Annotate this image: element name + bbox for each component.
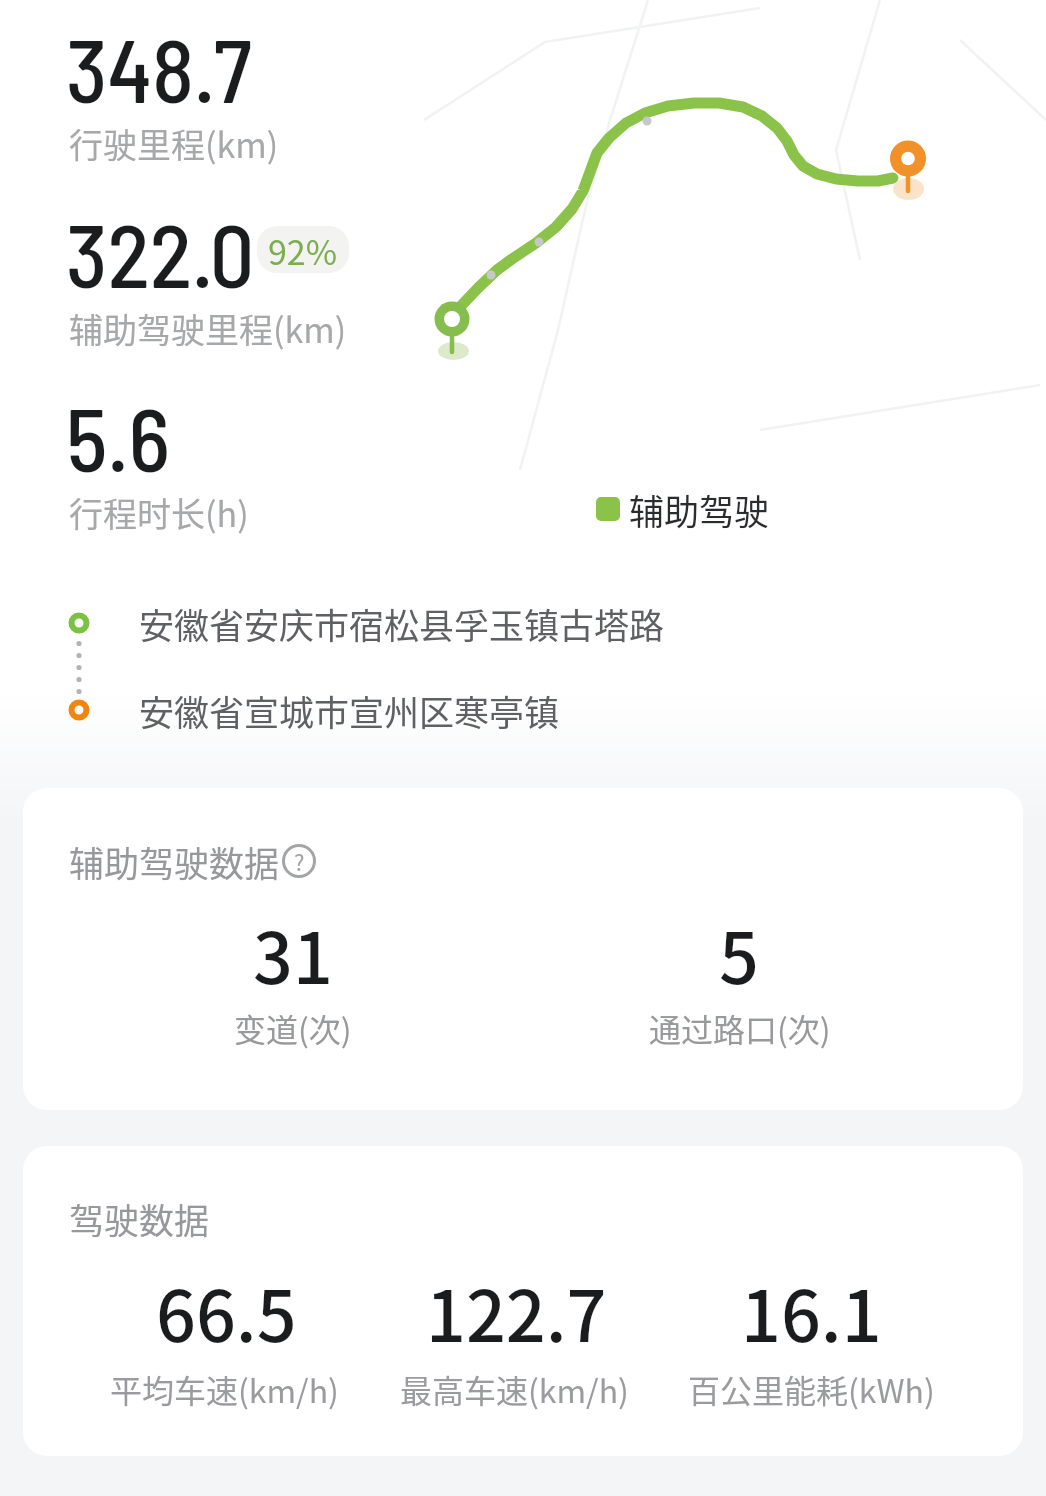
staticText: 行程时长(h) xyxy=(69,488,249,537)
staticText: 变道(次) xyxy=(234,1005,352,1051)
staticText: 安徽省宣城市宣州区寒亭镇 xyxy=(139,685,560,736)
staticText: 辅助驾驶里程(km) xyxy=(69,304,347,353)
staticText: 平均车速(km/h) xyxy=(110,1366,339,1412)
staticText: 最高车速(km/h) xyxy=(400,1366,629,1412)
button[interactable]: ? xyxy=(277,839,321,883)
staticText: 5 xyxy=(719,903,759,1004)
staticText: 322.0 xyxy=(66,200,255,306)
staticText: 16.1 xyxy=(741,1261,882,1362)
staticText: 驾驶数据 xyxy=(69,1193,210,1244)
staticText: 安徽省安庆市宿松县孚玉镇古塔路 xyxy=(139,598,665,649)
staticText: 辅助驾驶数据 xyxy=(69,836,280,887)
staticText: 通过路口(次) xyxy=(649,1005,831,1051)
staticText: 122.7 xyxy=(426,1261,607,1362)
staticText: 348.7 xyxy=(66,15,252,121)
staticText: 31 xyxy=(253,903,333,1004)
staticText: 行驶里程(km) xyxy=(69,119,279,168)
staticText: 辅助驾驶 xyxy=(629,484,770,535)
staticText: 66.5 xyxy=(156,1261,297,1362)
staticText: ? xyxy=(294,845,305,877)
staticText: 5.6 xyxy=(66,384,170,490)
staticText: 百公里能耗(kWh) xyxy=(688,1366,935,1412)
staticText: 92% xyxy=(268,226,338,273)
